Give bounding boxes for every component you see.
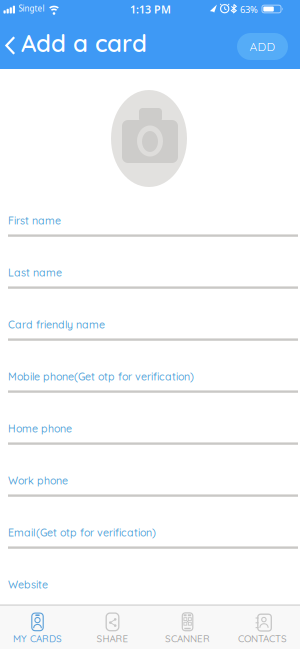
- staticText: Home phone: [8, 422, 72, 435]
- staticText: Website: [8, 578, 48, 591]
- button[interactable]: Mobile phone(Get otp for verification): [8, 370, 298, 418]
- staticText: First name: [8, 214, 61, 227]
- staticText: Add a card: [21, 28, 147, 58]
- staticText: CONTACTS: [238, 632, 287, 645]
- button[interactable]: SHARE: [75, 604, 150, 649]
- button[interactable]: CONTACTS: [225, 604, 300, 649]
- button[interactable]: Website: [8, 578, 298, 626]
- button[interactable]: Card friendly name: [8, 318, 298, 366]
- staticText: Singtel: [18, 3, 44, 14]
- button[interactable]: Last name: [8, 266, 298, 314]
- staticText: SCANNER: [165, 632, 210, 645]
- button[interactable]: ADD: [237, 33, 288, 60]
- button[interactable]: Home phone: [8, 422, 298, 470]
- button[interactable]: First name: [8, 214, 298, 262]
- staticText: Last name: [8, 266, 62, 279]
- staticText: ADD: [249, 39, 275, 54]
- button[interactable]: [0, 0, 22, 69]
- staticText: 1:13 PM: [130, 2, 171, 16]
- button[interactable]: [111, 90, 187, 187]
- button[interactable]: MY CARDS: [0, 604, 75, 649]
- button[interactable]: Work phone: [8, 474, 298, 522]
- button[interactable]: SCANNER: [150, 604, 225, 649]
- button[interactable]: Email(Get otp for verification): [8, 526, 298, 574]
- staticText: Email(Get otp for verification): [8, 526, 156, 539]
- staticText: SHARE: [96, 632, 128, 645]
- staticText: Card friendly name: [8, 318, 105, 331]
- staticText: Work phone: [8, 474, 68, 487]
- staticText: 63%: [240, 3, 258, 16]
- staticText: MY CARDS: [13, 632, 62, 645]
- staticText: Mobile phone(Get otp for verification): [8, 370, 194, 383]
